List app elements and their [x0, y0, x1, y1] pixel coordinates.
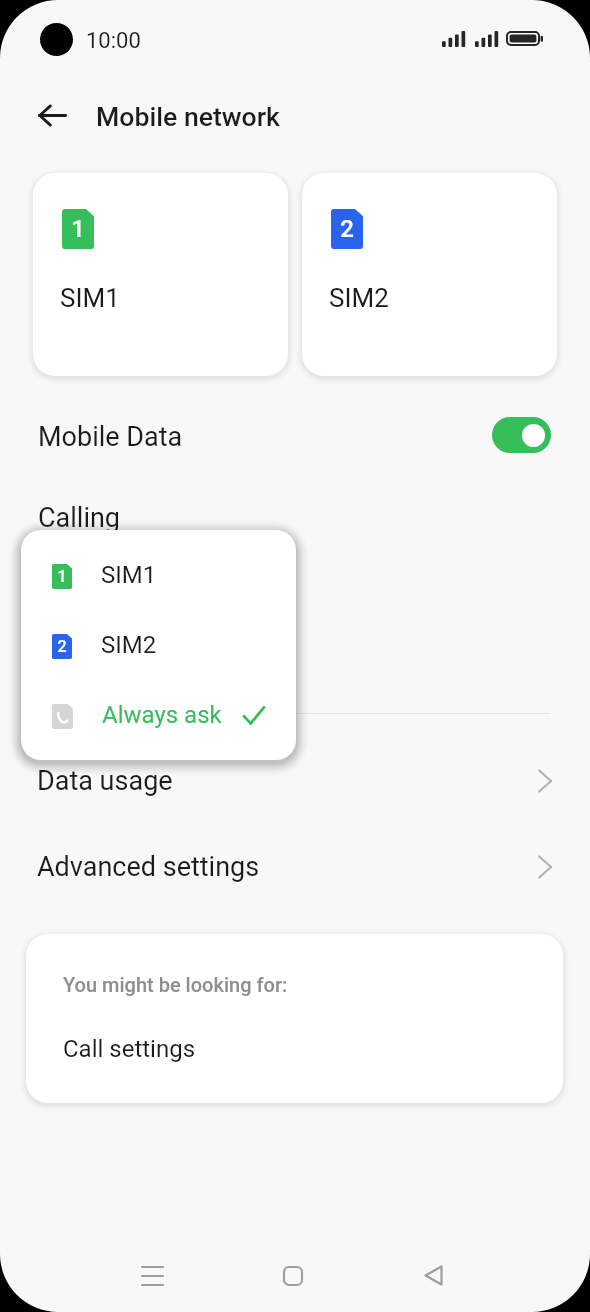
button[interactable]: Advanced settings [0, 837, 590, 897]
staticText: SMS [38, 585, 94, 617]
staticText: Data usage [37, 765, 173, 797]
staticText: SIM1 [101, 561, 157, 589]
button[interactable]: Mobile data on [492, 417, 551, 453]
staticText: Calling [38, 502, 121, 534]
staticText: 1 [57, 567, 67, 586]
staticText: SIM1 [60, 283, 120, 313]
button[interactable]: Back [28, 91, 76, 139]
staticText: Advanced settings [37, 851, 260, 883]
staticText: SIM2 [101, 631, 157, 659]
button[interactable]: Data usage [0, 751, 590, 811]
button[interactable]: 2 [21, 610, 296, 680]
button[interactable]: Home [263, 1246, 323, 1306]
staticText: You might be looking for: [63, 973, 288, 996]
button[interactable]: Recent apps [122, 1246, 182, 1306]
staticText: SIM2 [329, 283, 389, 313]
staticText: 1 [71, 215, 85, 243]
button[interactable]: Back [403, 1245, 463, 1305]
button[interactable]: 1 [21, 540, 296, 610]
staticText: Call settings [63, 1035, 196, 1063]
button[interactable]: Calling [0, 488, 590, 548]
button[interactable]: SMS [0, 571, 590, 631]
button[interactable]: Mobile Data [0, 407, 590, 467]
button[interactable]: 1 [33, 173, 288, 376]
staticText: 2 [340, 215, 354, 243]
button[interactable]: 2 [302, 173, 557, 376]
staticText: Mobile Data [38, 421, 183, 453]
staticText: 2 [57, 637, 67, 656]
button[interactable]: You might be looking for: [26, 934, 563, 1103]
button[interactable]: Always ask [21, 680, 296, 750]
staticText: Mobile network [96, 101, 280, 132]
staticText: 10:00 [86, 28, 141, 54]
staticText: Always ask [102, 701, 222, 729]
